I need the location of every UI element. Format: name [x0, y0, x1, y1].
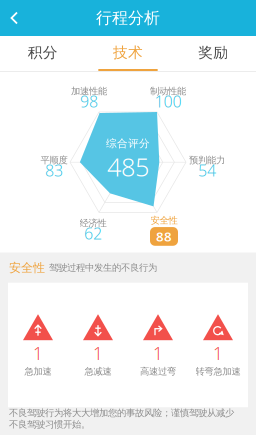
staticText: 加速性能: [71, 85, 107, 97]
staticText: 平顺度: [40, 154, 67, 166]
staticText: 行程分析: [96, 8, 160, 28]
staticText: 485: [107, 150, 149, 183]
staticText: 奖励: [198, 43, 228, 61]
staticText: 急减速: [84, 366, 111, 377]
staticText: 98: [80, 91, 98, 112]
staticText: 转弯急加速: [195, 366, 240, 377]
staticText: 综合评分: [106, 137, 150, 150]
staticText: 急加速: [24, 366, 51, 377]
staticText: 安全性: [9, 260, 45, 275]
button[interactable]: 1: [128, 314, 188, 377]
staticText: 83: [45, 160, 63, 181]
staticText: 88: [156, 228, 172, 245]
staticText: 技术: [113, 43, 143, 61]
staticText: 54: [198, 160, 216, 181]
staticText: 驾驶过程中发生的不良行为: [49, 262, 157, 273]
button[interactable]: 返回: [0, 0, 33, 36]
staticText: 经济性: [79, 217, 106, 229]
staticText: 制动性能: [150, 85, 186, 97]
staticText: 不良驾驶行为将大大增加您的事故风险；谨慎驾驶从减少不良驾驶习惯开始。: [9, 407, 234, 430]
button[interactable]: 积分: [0, 36, 85, 71]
button[interactable]: 奖励: [171, 36, 256, 71]
staticText: 预判能力: [189, 154, 225, 166]
button[interactable]: 技术: [85, 36, 171, 71]
staticText: 62: [84, 223, 102, 244]
staticText: 安全性: [150, 215, 177, 226]
staticText: 1: [33, 342, 43, 365]
staticText: 积分: [28, 43, 58, 61]
staticText: 1: [93, 342, 103, 365]
staticText: 100: [154, 91, 181, 112]
button[interactable]: 1: [188, 314, 248, 377]
button[interactable]: 1: [8, 314, 68, 377]
staticText: 高速过弯: [140, 366, 176, 377]
staticText: 1: [213, 342, 223, 365]
staticText: 1: [153, 342, 163, 365]
button[interactable]: 1: [68, 314, 128, 377]
